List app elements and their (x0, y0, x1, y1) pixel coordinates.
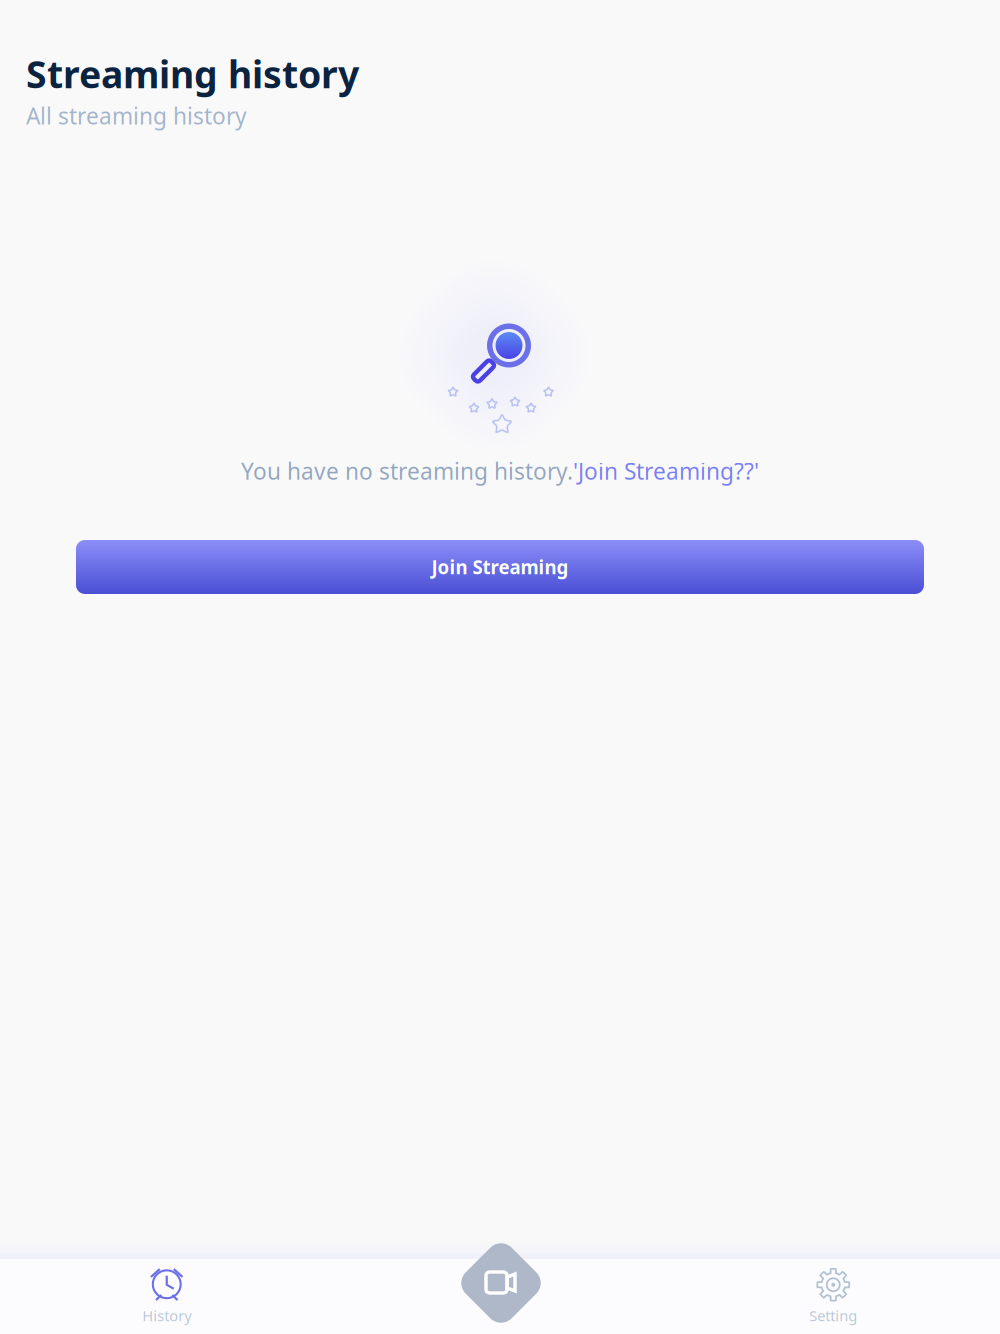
staticText: Setting (809, 1306, 857, 1325)
staticText: 'Join Streaming??' (573, 456, 759, 486)
staticText: History (142, 1306, 191, 1325)
staticText: Streaming history (26, 49, 359, 99)
button[interactable]: Record video (447, 1229, 555, 1334)
button[interactable]: History (0, 1259, 333, 1334)
button[interactable]: Join Streaming (76, 540, 924, 594)
staticText: You have no streaming history. (241, 456, 573, 486)
staticText: Join Streaming (431, 555, 568, 579)
staticText: All streaming history (26, 101, 247, 131)
button[interactable]: Setting (666, 1259, 1000, 1334)
